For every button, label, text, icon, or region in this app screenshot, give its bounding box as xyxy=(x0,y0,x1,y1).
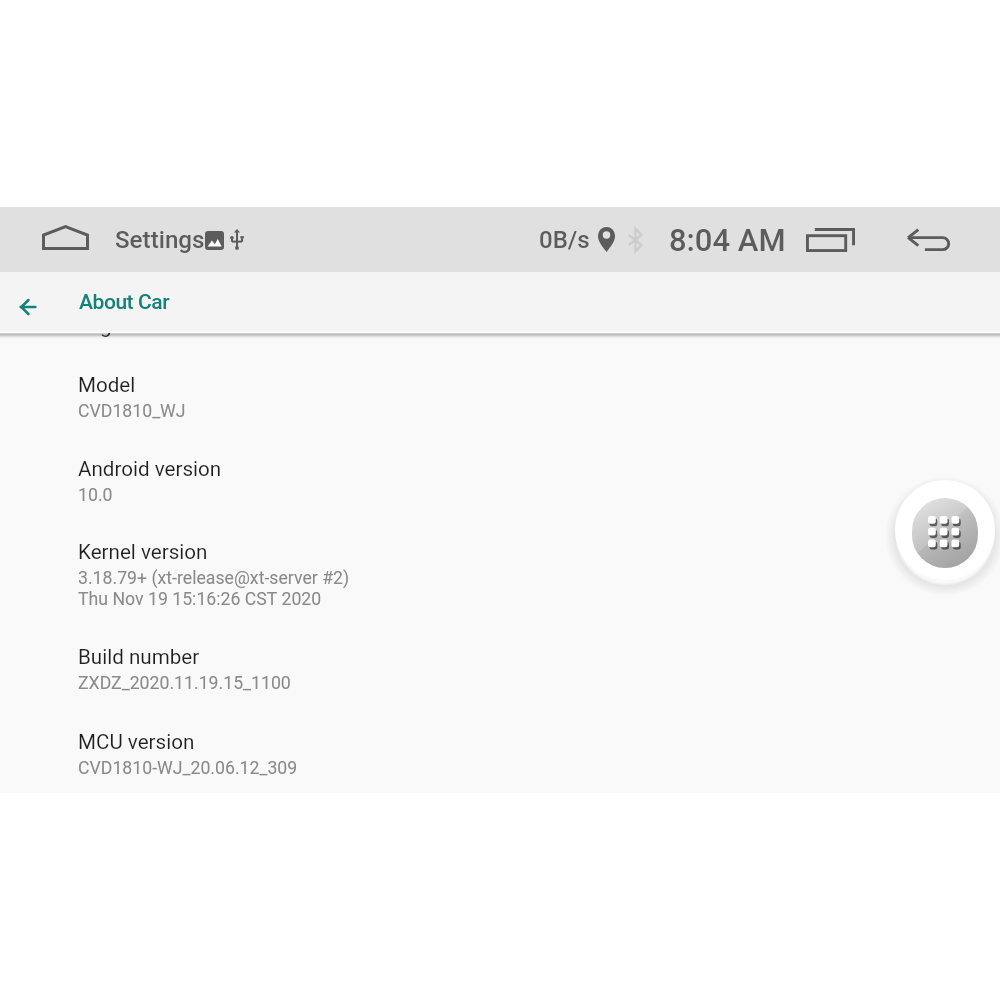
staticText: Build number xyxy=(78,645,200,669)
staticText: ZXDZ_2020.11.19.15_1100 xyxy=(78,673,291,694)
staticText: About Car xyxy=(79,290,170,315)
button[interactable]: Home xyxy=(28,207,102,272)
button[interactable]: Model xyxy=(0,373,1000,422)
staticText: Kernel version xyxy=(78,540,208,564)
staticText: Settings xyxy=(115,226,205,254)
staticText: 8:04 AM xyxy=(669,222,786,258)
button[interactable]: App drawer xyxy=(895,480,995,580)
staticText: MCU version xyxy=(78,730,195,754)
button[interactable]: Navigate up xyxy=(0,272,56,332)
button[interactable]: Build number xyxy=(0,645,1000,694)
staticText: 10.0 xyxy=(78,485,113,506)
staticText: 0B/s xyxy=(539,226,590,254)
staticText: Model xyxy=(78,373,136,397)
staticText: CVD1810_WJ xyxy=(78,401,186,422)
button[interactable]: Back xyxy=(894,207,962,272)
staticText: CVD1810-WJ_20.06.12_309 xyxy=(78,758,298,779)
staticText: Android version xyxy=(78,457,222,481)
button[interactable]: Recent apps xyxy=(796,207,864,272)
button[interactable]: Android version xyxy=(0,457,1000,506)
staticText: Legal information xyxy=(78,333,240,338)
button[interactable]: MCU version xyxy=(0,730,1000,779)
staticText: 3.18.79+ (xt-release@xt-server #2) Thu N… xyxy=(78,568,350,609)
button[interactable]: Kernel version xyxy=(0,540,1000,609)
